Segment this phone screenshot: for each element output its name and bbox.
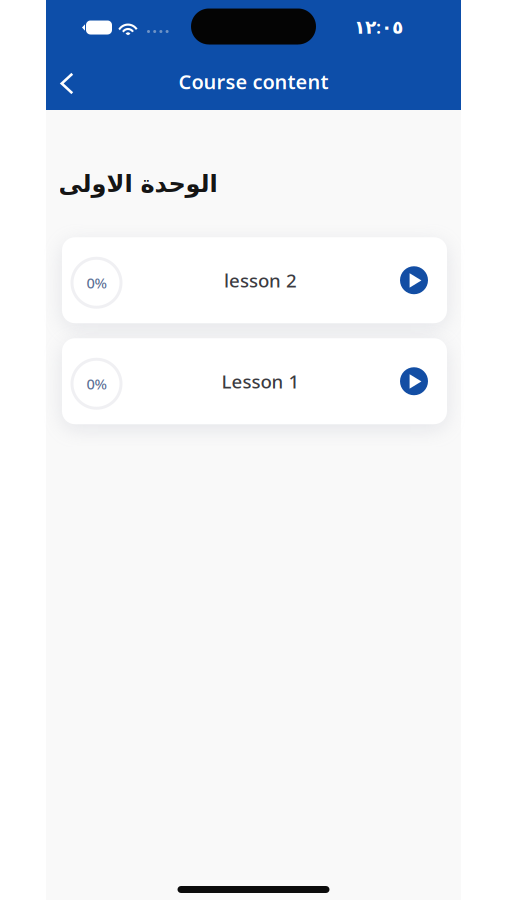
staticText: 0%: [86, 273, 106, 292]
staticText: lesson 2: [224, 268, 297, 293]
button[interactable]: 0%: [62, 237, 447, 323]
staticText: 0%: [86, 374, 106, 393]
button[interactable]: Back: [49, 59, 85, 103]
staticText: الوحدة الاولى: [58, 170, 217, 197]
staticText: ١٢:٠٥: [354, 14, 403, 39]
staticText: Lesson 1: [221, 369, 299, 394]
button[interactable]: 0%: [62, 338, 447, 424]
staticText: Course content: [178, 68, 328, 95]
